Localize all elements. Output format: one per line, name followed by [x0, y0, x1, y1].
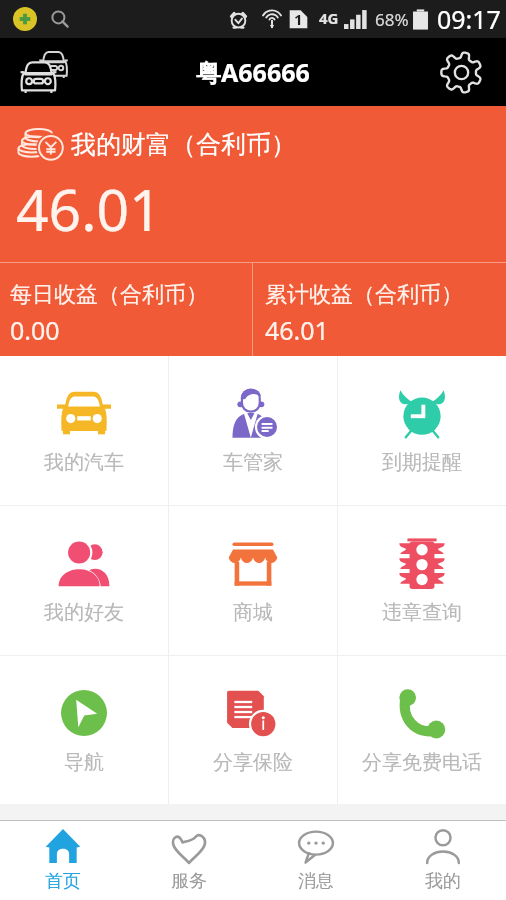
- staticText: 46.01: [265, 313, 329, 347]
- button[interactable]: 商城: [169, 506, 337, 655]
- button[interactable]: 消息: [252, 821, 379, 900]
- staticText: 每日收益（合利币）: [10, 281, 208, 309]
- button[interactable]: 车管家: [169, 356, 337, 505]
- staticText: 累计收益（合利币）: [265, 281, 463, 309]
- button[interactable]: Settings: [433, 44, 489, 100]
- staticText: 4G: [319, 8, 339, 28]
- staticText: 我的好友: [44, 600, 124, 625]
- button[interactable]: My cars: [13, 41, 75, 103]
- staticText: 车管家: [223, 450, 283, 475]
- button[interactable]: 首页: [0, 821, 126, 900]
- staticText: 我的财富（合利币）: [71, 129, 296, 160]
- staticText: 商城: [233, 600, 273, 625]
- staticText: 我的汽车: [44, 450, 124, 475]
- staticText: 分享免费电话: [362, 750, 482, 775]
- button[interactable]: 违章查询: [338, 506, 506, 655]
- staticText: 我的: [425, 870, 461, 893]
- button[interactable]: 我的: [379, 821, 506, 900]
- staticText: 68%: [375, 8, 409, 31]
- button[interactable]: 分享保险: [169, 656, 337, 804]
- button[interactable]: 我的好友: [0, 506, 168, 655]
- staticText: 消息: [298, 870, 334, 893]
- button[interactable]: 我的汽车: [0, 356, 168, 505]
- staticText: 首页: [45, 870, 81, 893]
- staticText: 46.01: [16, 170, 162, 248]
- staticText: 粤A66666: [196, 55, 310, 89]
- staticText: 分享保险: [213, 750, 293, 775]
- button[interactable]: 每日收益（合利币）: [0, 263, 252, 356]
- staticText: 09:17: [437, 2, 501, 36]
- staticText: 违章查询: [382, 600, 462, 625]
- staticText: 0.00: [10, 313, 60, 347]
- staticText: 导航: [64, 750, 104, 775]
- staticText: 到期提醒: [382, 450, 462, 475]
- button[interactable]: 分享免费电话: [338, 656, 506, 804]
- staticText: 1: [294, 9, 303, 29]
- button[interactable]: 导航: [0, 656, 168, 804]
- button[interactable]: 到期提醒: [338, 356, 506, 505]
- button[interactable]: 累计收益（合利币）: [253, 263, 506, 356]
- button[interactable]: 服务: [126, 821, 252, 900]
- staticText: 服务: [171, 870, 207, 893]
